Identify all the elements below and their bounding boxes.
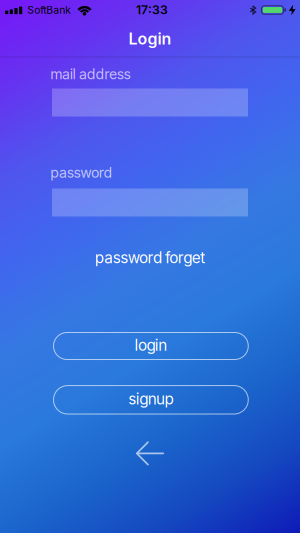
button[interactable]: signup (53, 386, 248, 414)
staticText: signup (128, 390, 174, 408)
button[interactable]: password forget (95, 248, 205, 267)
staticText: 17:33 (136, 2, 168, 17)
button[interactable]: Back (137, 442, 163, 465)
button[interactable]: mail address (52, 88, 248, 116)
staticText: password forget (95, 248, 205, 267)
button[interactable]: password (52, 188, 248, 216)
staticText: Login (128, 29, 171, 48)
staticText: password (50, 164, 112, 181)
button[interactable]: login (53, 332, 248, 359)
staticText: SoftBank (27, 4, 71, 16)
staticText: mail address (50, 65, 130, 82)
staticText: login (134, 336, 167, 354)
